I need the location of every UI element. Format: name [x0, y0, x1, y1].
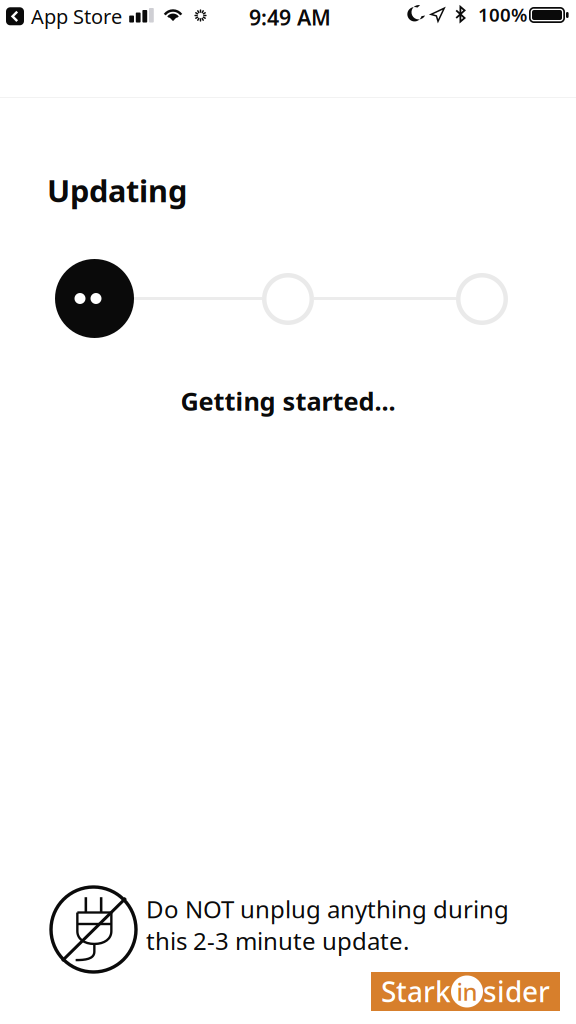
- staticText: Updating: [47, 170, 187, 211]
- staticText: Stark: [381, 973, 451, 1010]
- staticText: Getting started...: [180, 384, 395, 418]
- staticText: 9:49 AM: [249, 3, 331, 31]
- staticText: sider: [483, 973, 550, 1010]
- staticText: App Store: [31, 3, 122, 30]
- staticText: 100%: [478, 2, 527, 27]
- staticText: Do NOT unplug anything during this 2-3 m…: [146, 893, 509, 957]
- staticText: in: [456, 976, 477, 1007]
- button[interactable]: Back to App Store: [0, 0, 128, 34]
